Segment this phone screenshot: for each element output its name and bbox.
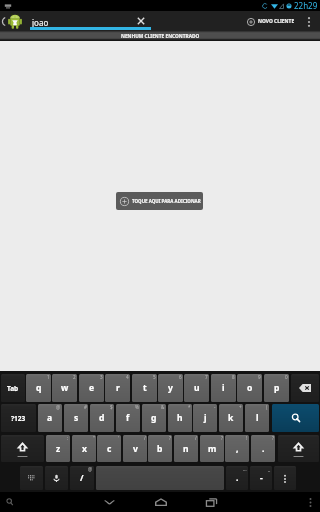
staticText: /: [80, 472, 84, 484]
staticText: q: [36, 382, 42, 394]
staticText: -: [214, 404, 216, 410]
button[interactable]: Search: [272, 404, 319, 432]
button[interactable]: 2: [52, 374, 77, 402]
button[interactable]: Shift: [1, 435, 44, 462]
staticText: o: [247, 382, 253, 394]
button[interactable]: Home: [135, 492, 186, 512]
staticText: 7: [205, 374, 208, 380]
staticText: 1: [47, 374, 50, 380]
staticText: g: [151, 412, 157, 424]
button[interactable]: 5: [132, 374, 157, 402]
staticText: x: [82, 443, 87, 455]
button[interactable]: Clear query: [132, 11, 149, 32]
staticText: y: [168, 382, 173, 394]
staticText: 22h29: [294, 0, 318, 11]
button[interactable]: 0: [264, 374, 289, 402]
button[interactable]: ?123: [1, 404, 36, 432]
staticText: l: [256, 412, 259, 424]
button[interactable]: 7: [184, 374, 209, 402]
staticText: %: [135, 404, 139, 410]
button[interactable]: 1: [26, 374, 51, 402]
staticText: +: [239, 404, 242, 410]
staticText: c: [107, 443, 112, 455]
staticText: &: [161, 404, 165, 410]
staticText: *: [188, 404, 191, 410]
staticText: NENHUM CLIENTE ENCONTRADO: [121, 33, 200, 40]
button[interactable]: _: [250, 466, 272, 490]
staticText: ,: [236, 443, 239, 455]
button[interactable]: NOVO CLIENTE: [242, 11, 298, 32]
button[interactable]: Emoji: [274, 466, 296, 490]
button[interactable]: Navigate up: [0, 11, 24, 32]
button[interactable]: TOQUE AQUI PARA ADICIONAR: [116, 192, 203, 210]
staticText: …: [243, 466, 247, 472]
staticText: #: [84, 404, 87, 410]
button[interactable]: Backspace: [291, 374, 319, 402]
staticText: f: [126, 412, 130, 424]
button[interactable]: More options: [298, 11, 320, 32]
button[interactable]: 4: [105, 374, 130, 402]
button[interactable]: ': [97, 435, 121, 462]
button[interactable]: Recent apps: [186, 492, 237, 512]
button[interactable]: 9: [237, 374, 262, 402]
staticText: d: [99, 412, 105, 424]
button[interactable]: Menu: [304, 496, 316, 508]
staticText: joao: [32, 17, 49, 28]
staticText: k: [228, 412, 234, 424]
staticText: 9: [258, 374, 261, 380]
staticText: r: [116, 382, 120, 394]
staticText: u: [194, 382, 200, 394]
button[interactable]: ": [72, 435, 96, 462]
button[interactable]: /: [174, 435, 198, 462]
staticText: b: [157, 443, 163, 455]
button[interactable]: Shift: [278, 435, 319, 462]
staticText: @: [56, 404, 61, 410]
button[interactable]: Hide keyboard: [84, 492, 135, 512]
button[interactable]: 6: [158, 374, 183, 402]
staticText: s: [74, 412, 79, 424]
button[interactable]: &: [142, 404, 166, 432]
staticText: /: [195, 435, 197, 441]
button[interactable]: ?: [251, 435, 275, 462]
staticText: .: [236, 472, 239, 484]
button[interactable]: ?: [200, 435, 224, 462]
button[interactable]: 8: [211, 374, 236, 402]
staticText: i: [222, 382, 225, 394]
staticText: !: [246, 435, 248, 441]
staticText: ?: [272, 435, 274, 441]
staticText: TOQUE AQUI PARA ADICIONAR: [132, 198, 201, 204]
button[interactable]: !: [225, 435, 249, 462]
button[interactable]: -: [193, 404, 217, 432]
button[interactable]: 3: [79, 374, 104, 402]
button[interactable]: :: [46, 435, 70, 462]
staticText: m: [208, 443, 217, 455]
staticText: @: [88, 466, 93, 472]
button[interactable]: (: [245, 404, 269, 432]
button[interactable]: *: [168, 404, 192, 432]
button[interactable]: +: [219, 404, 243, 432]
staticText: a: [47, 412, 53, 424]
staticText: _: [268, 466, 271, 472]
button[interactable]: @: [70, 466, 94, 490]
staticText: (: [266, 404, 268, 410]
button[interactable]: Change keyboard: [20, 466, 43, 490]
button[interactable]: /: [123, 435, 147, 462]
button[interactable]: Voice input: [45, 466, 68, 490]
button[interactable]: ?: [148, 435, 172, 462]
button[interactable]: …: [226, 466, 248, 490]
button[interactable]: @: [38, 404, 62, 432]
staticText: /: [144, 435, 146, 441]
staticText: ?123: [11, 414, 26, 423]
staticText: ": [93, 435, 95, 441]
staticText: :: [67, 435, 69, 441]
button[interactable]: $: [90, 404, 114, 432]
button[interactable]: Tab: [1, 374, 25, 402]
button[interactable]: %: [116, 404, 140, 432]
staticText: ': [118, 435, 120, 441]
staticText: w: [61, 382, 69, 394]
staticText: $: [110, 404, 113, 410]
button[interactable]: #: [64, 404, 88, 432]
button[interactable]: Search: [2, 494, 18, 510]
staticText: 6: [179, 374, 182, 380]
